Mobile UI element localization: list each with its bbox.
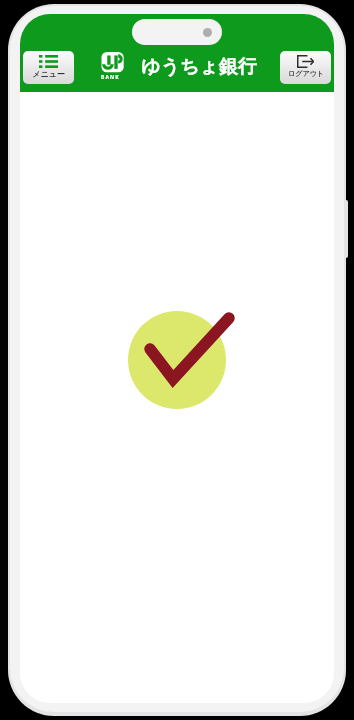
staticText: メニュー bbox=[32, 69, 65, 79]
staticText: ログアウト bbox=[288, 69, 324, 78]
button[interactable]: ログアウト bbox=[280, 51, 331, 84]
button[interactable]: メニュー bbox=[23, 51, 74, 84]
staticText: BANK bbox=[101, 74, 120, 81]
staticText: ゆうちょ銀行 bbox=[141, 55, 257, 79]
